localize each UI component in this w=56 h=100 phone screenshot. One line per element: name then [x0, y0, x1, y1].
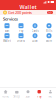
staticText: Pay	[37, 95, 41, 98]
button[interactable]: Scan	[0, 23, 14, 33]
staticText: Wallet	[3, 39, 11, 43]
staticText: Get 200 points	[8, 10, 32, 15]
button[interactable]: Home	[0, 88, 11, 100]
staticText: Shop	[13, 95, 20, 98]
button[interactable]: Loan	[28, 33, 42, 43]
staticText: Scan	[4, 29, 9, 33]
button[interactable]: Cards	[28, 23, 42, 33]
staticText: Cards	[31, 29, 38, 33]
button[interactable]: Wallet	[0, 33, 14, 43]
staticText: Wallet	[19, 3, 36, 11]
staticText: Me	[48, 95, 52, 98]
staticText: Invest	[17, 39, 25, 43]
staticText: Services	[3, 16, 18, 22]
staticText: Home	[2, 95, 10, 98]
button[interactable]: Pay	[14, 23, 28, 33]
staticText: Bills	[46, 29, 52, 33]
button[interactable]: Pay	[34, 88, 45, 100]
button[interactable]: More	[42, 33, 56, 43]
button[interactable]: Bills	[42, 23, 56, 33]
button[interactable]: Me	[45, 88, 56, 100]
staticText: Loan	[32, 39, 38, 43]
button[interactable]: Invest	[14, 33, 28, 43]
staticText: Scan	[25, 95, 30, 98]
staticText: More	[45, 39, 52, 43]
button[interactable]: Shop	[11, 88, 22, 100]
button[interactable]: Scan	[22, 88, 34, 100]
staticText: Pay	[19, 29, 23, 33]
staticText: Go	[48, 11, 52, 14]
button[interactable]: Get 200 points	[0, 10, 56, 15]
